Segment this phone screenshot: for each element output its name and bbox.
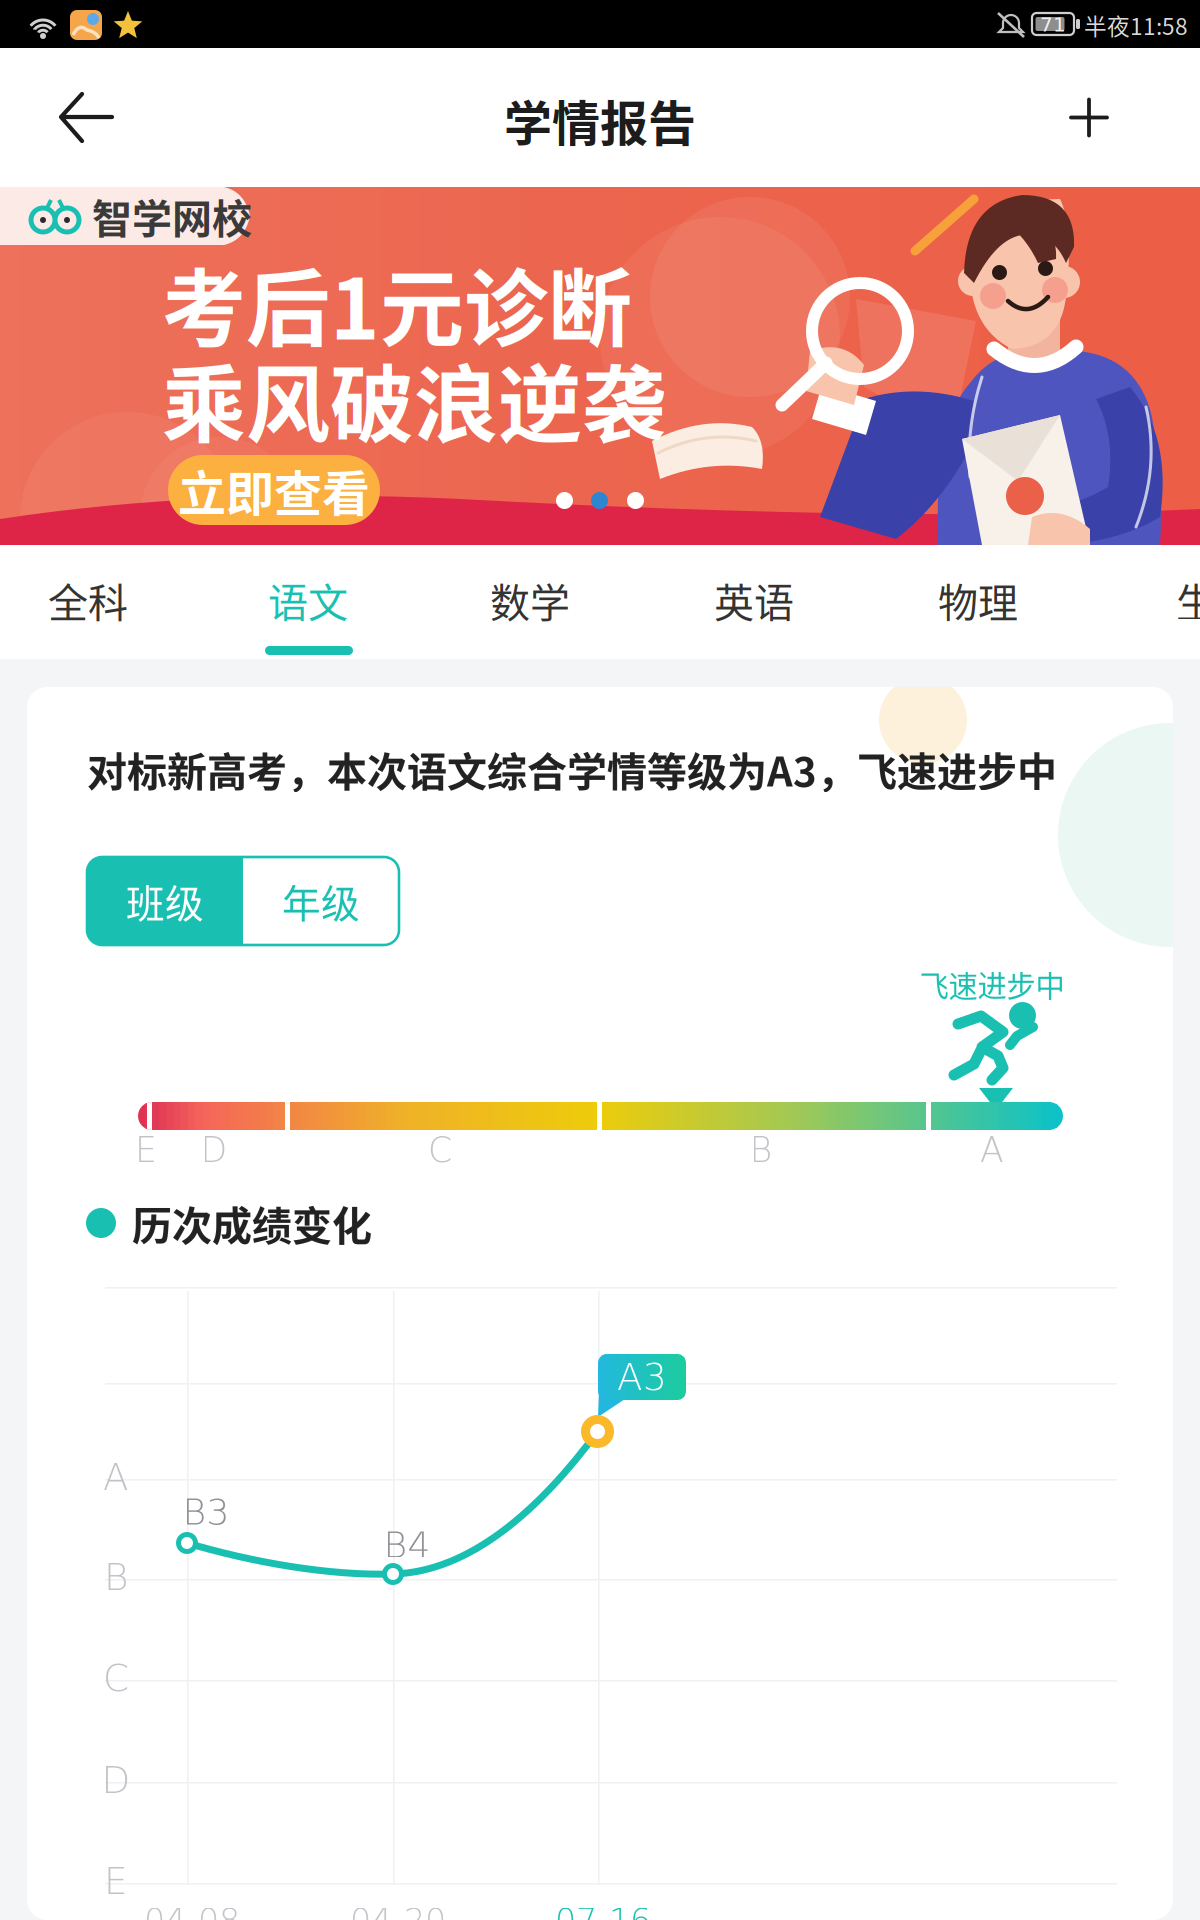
staticText: A <box>980 1130 1004 1170</box>
staticText: 71 <box>1040 13 1066 36</box>
staticText: 04-20 <box>350 1902 446 1920</box>
button[interactable]: 语文 <box>208 557 408 643</box>
button[interactable]: 年级 <box>243 857 399 945</box>
button[interactable]: 数学 <box>430 557 630 643</box>
staticText: C <box>428 1130 452 1170</box>
staticText: 班级 <box>126 873 204 929</box>
button[interactable]: 全科 <box>0 557 188 643</box>
staticText: 语文 <box>268 571 348 629</box>
staticText: B3 <box>182 1491 229 1533</box>
staticText: 04-08 <box>144 1902 240 1920</box>
button[interactable]: 添加 <box>1014 48 1164 187</box>
staticText: 英语 <box>714 571 794 629</box>
staticText: 半夜11:58 <box>1084 9 1188 41</box>
staticText: 年级 <box>282 873 360 929</box>
staticText: B <box>749 1130 772 1170</box>
staticText: E <box>135 1130 157 1170</box>
staticText: 学情报告 <box>504 85 696 155</box>
staticText: D <box>200 1130 227 1170</box>
staticText: B <box>104 1555 128 1599</box>
staticText: 对标新高考，本次语文综合学情等级为A3，飞速进步中 <box>87 740 1057 798</box>
staticText: 立即查看 <box>178 455 370 525</box>
staticText: 07-16 <box>555 1902 651 1920</box>
staticText: 生 <box>1176 571 1200 629</box>
staticText: C <box>103 1656 129 1700</box>
button[interactable]: 物理 <box>878 557 1078 643</box>
staticText: 飞速进步中 <box>919 963 1064 1005</box>
staticText: 智学网校 <box>92 187 252 245</box>
button[interactable]: 返回 <box>0 48 172 187</box>
staticText: 物理 <box>938 571 1018 629</box>
staticText: 历次成绩变化 <box>132 1194 372 1252</box>
staticText: 考后1元诊断 <box>162 242 632 364</box>
staticText: E <box>104 1859 128 1903</box>
staticText: A3 <box>617 1355 667 1399</box>
button[interactable]: 考后1元诊断 乘风破浪逆袭 广告 <box>0 187 1200 545</box>
button[interactable]: 生 <box>1096 557 1200 643</box>
staticText: B4 <box>383 1524 430 1566</box>
staticText: 全科 <box>48 571 128 629</box>
button[interactable]: 英语 <box>654 557 854 643</box>
button[interactable]: 班级 <box>87 857 243 945</box>
staticText: 数学 <box>490 571 570 629</box>
staticText: D <box>101 1758 130 1802</box>
staticText: A <box>103 1455 129 1499</box>
staticText: 乘风破浪逆袭 <box>162 338 666 460</box>
